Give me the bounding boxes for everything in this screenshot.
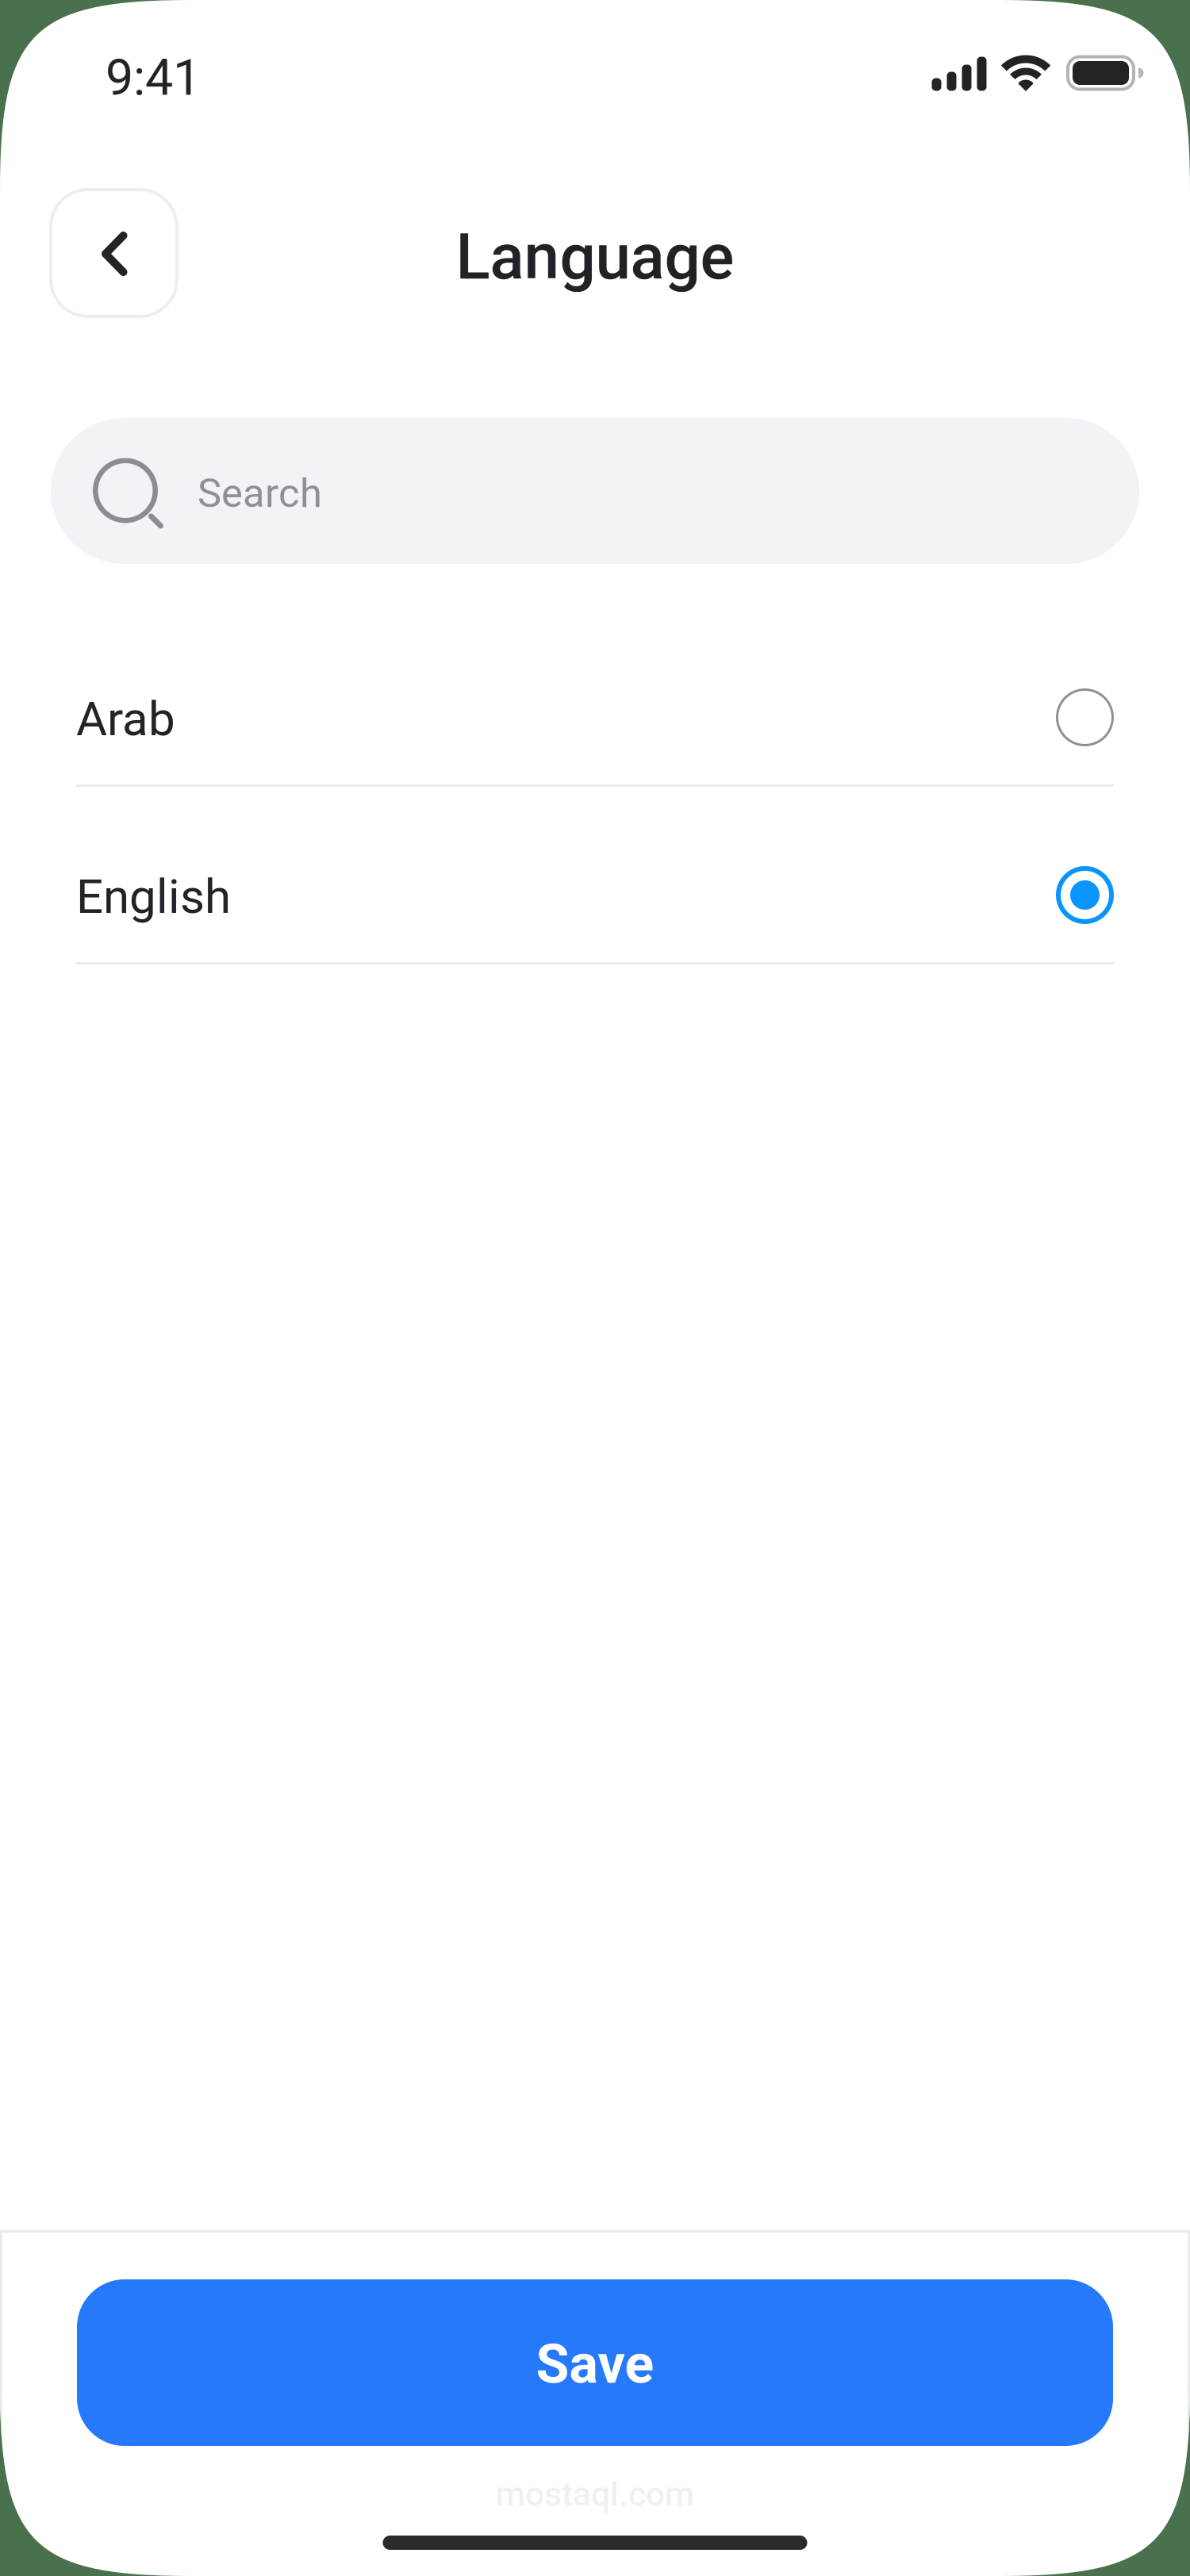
staticText: English: [76, 869, 231, 924]
button[interactable]: Back: [51, 190, 177, 316]
staticText: Language: [456, 220, 734, 294]
staticText: Save: [536, 2333, 654, 2396]
button[interactable]: English: [76, 825, 1114, 1002]
button[interactable]: Search: [51, 418, 1139, 564]
staticText: 9:41: [106, 49, 201, 107]
button[interactable]: Arab: [76, 647, 1114, 825]
staticText: Search: [198, 470, 322, 517]
staticText: Arab: [76, 691, 175, 747]
staticText: mostaql.com: [496, 2474, 694, 2514]
button[interactable]: Save: [77, 2279, 1113, 2446]
